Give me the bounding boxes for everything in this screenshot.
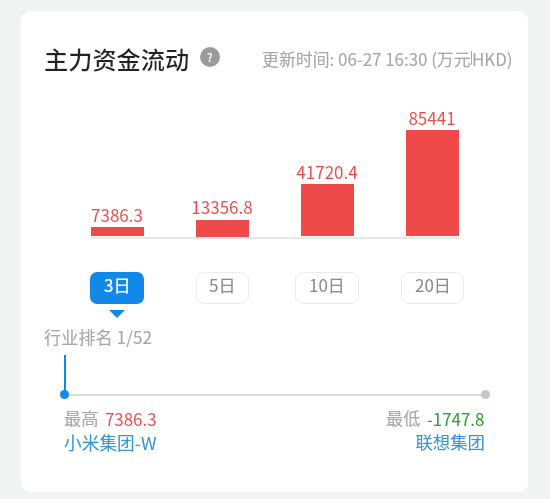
staticText: 10日 [309,272,345,297]
staticText: 5日 [209,272,236,297]
button[interactable]: 3日 [90,272,144,304]
staticText: 7386.3 [47,202,187,227]
button[interactable]: 10日 [295,272,359,304]
button[interactable]: Help [200,47,220,67]
staticText: 85441 [362,105,502,130]
staticText: 7386.3 [105,406,157,430]
button[interactable]: 5日 [196,272,249,304]
button[interactable]: 20日 [401,272,464,304]
staticText: 3日 [104,272,131,297]
staticText: HKD) [472,46,513,70]
staticText: 联想集团 [285,429,485,454]
staticText: ? [207,49,213,66]
staticText: 最低 [386,405,421,430]
staticText: 主力资金流动 [44,41,190,76]
staticText: 13356.8 [152,194,292,219]
staticText: 最高 [64,405,99,430]
staticText: 小米集团-W [64,429,157,455]
staticText: 更新时间: 06-27 16:30 (万元 [262,46,471,70]
staticText: 行业排名 1/52 [44,324,152,349]
staticText: 20日 [415,272,451,297]
staticText: 41720.4 [257,159,397,184]
staticText: -1747.8 [427,406,485,430]
